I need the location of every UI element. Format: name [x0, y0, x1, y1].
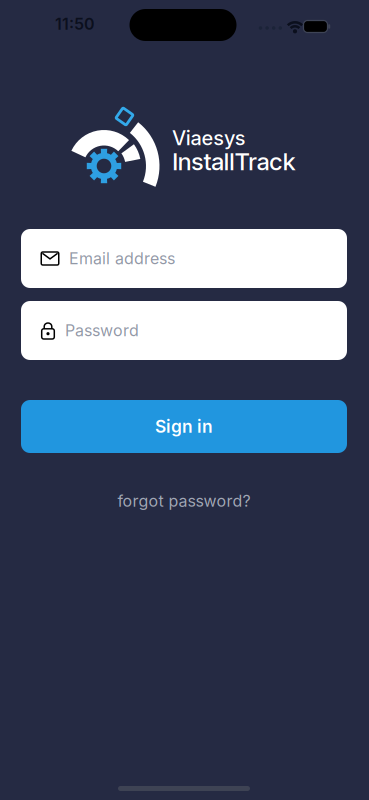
button[interactable]: forgot password?	[117, 492, 250, 510]
staticText: 11:50	[55, 15, 95, 33]
staticText: Sign in	[155, 416, 213, 437]
button[interactable]: Sign in	[21, 400, 347, 453]
staticText: forgot password?	[117, 492, 250, 510]
button[interactable]: Email address	[21, 229, 347, 288]
button[interactable]: Password	[21, 301, 347, 360]
staticText: InstallTrack	[172, 147, 295, 176]
staticText: Viaesys	[172, 126, 246, 150]
staticText: Email address	[69, 249, 175, 268]
staticText: Password	[65, 321, 139, 340]
